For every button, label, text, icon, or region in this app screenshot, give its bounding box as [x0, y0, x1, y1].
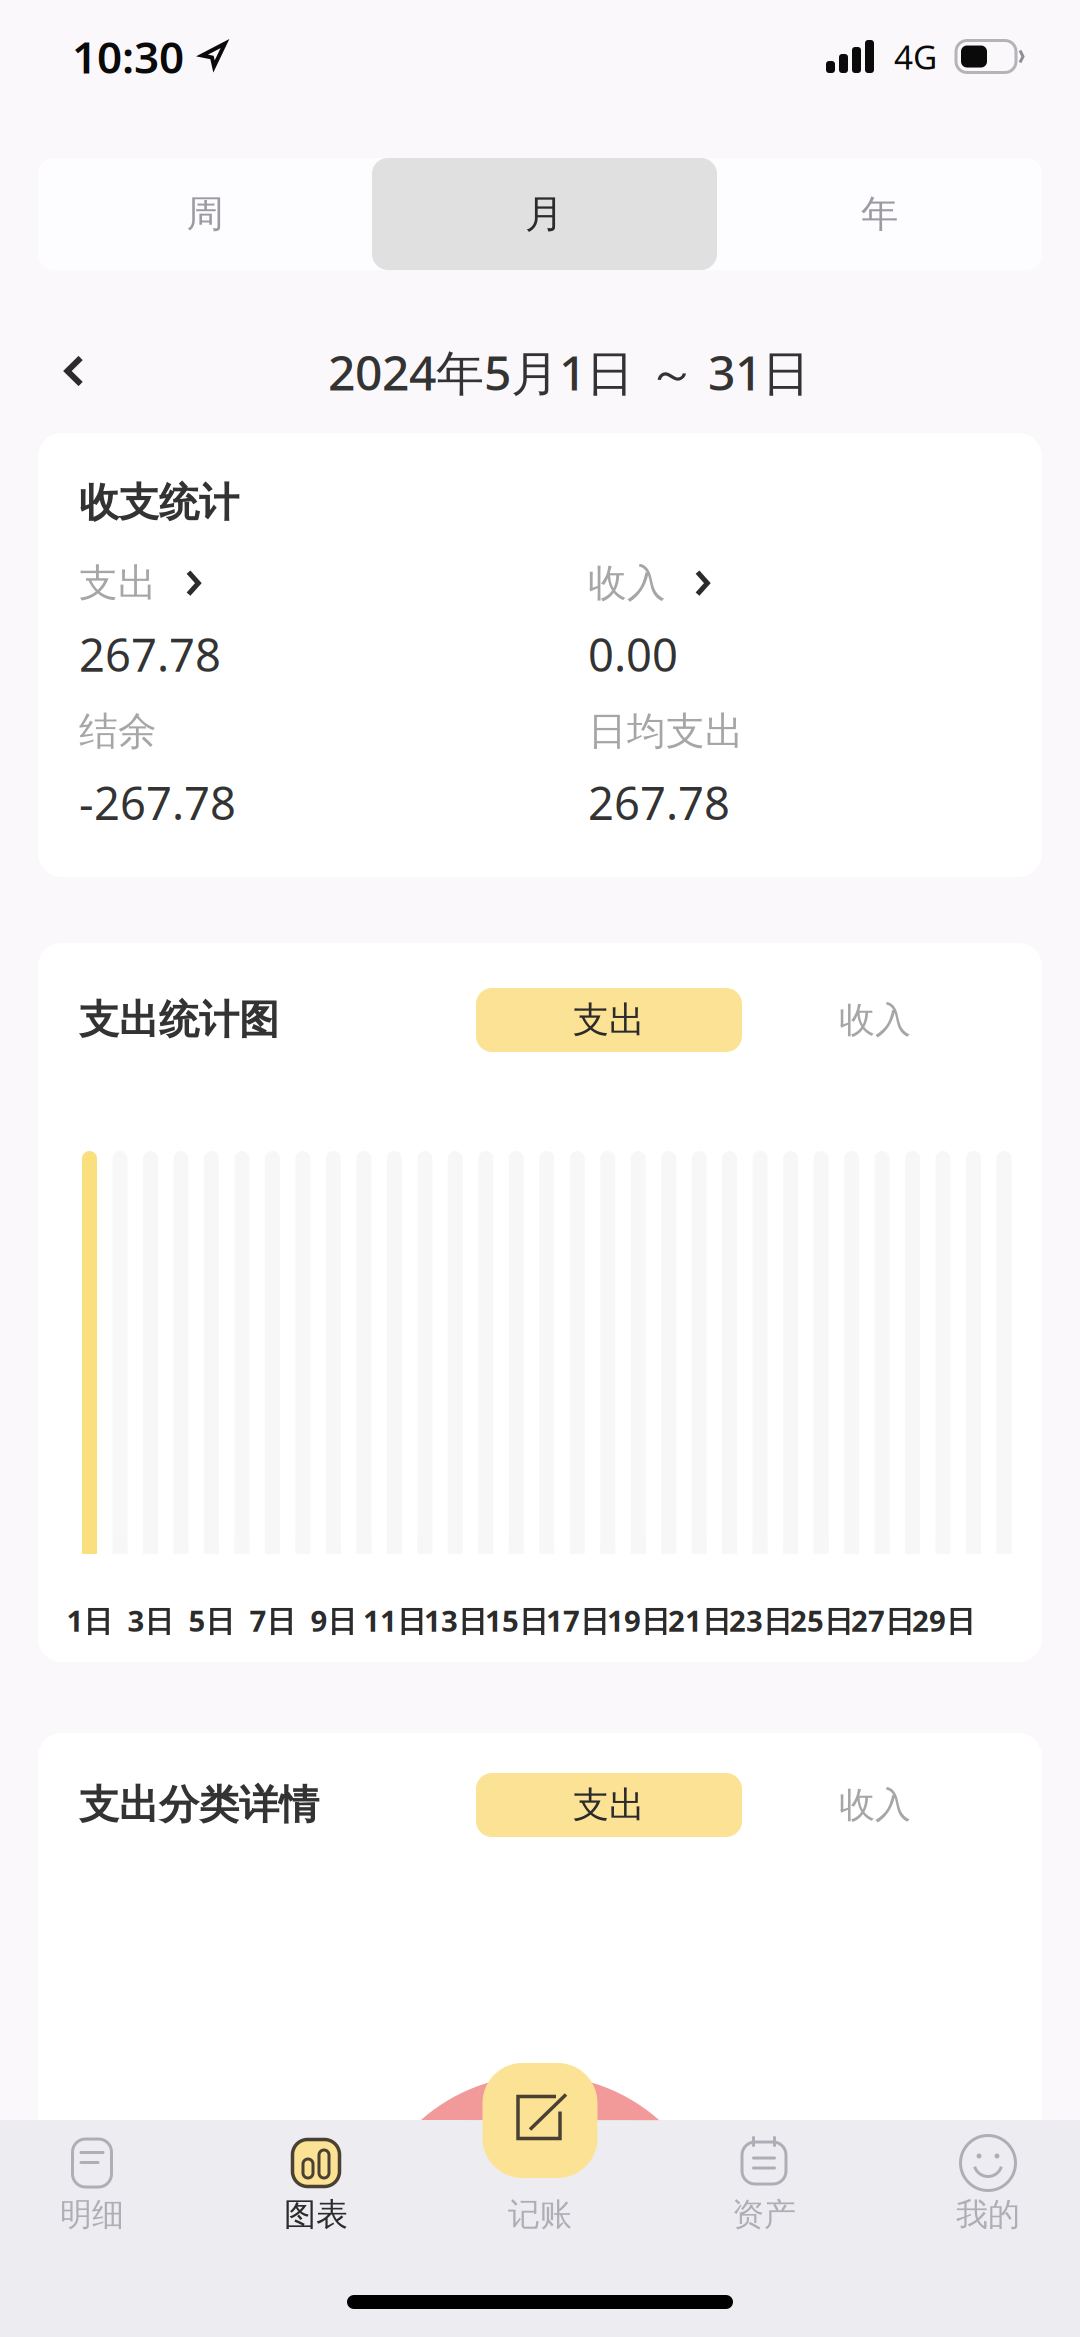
- staticText: 4G: [894, 34, 937, 79]
- staticText: 收入: [839, 1783, 911, 1827]
- staticText: 11日: [363, 1601, 426, 1640]
- staticText: 17日: [546, 1601, 609, 1640]
- button[interactable]: 明细: [0, 2134, 204, 2259]
- staticText: 13日: [424, 1601, 487, 1640]
- staticText: 月: [525, 190, 564, 238]
- staticText: 10:30: [72, 27, 184, 86]
- staticText: 5日: [188, 1601, 234, 1640]
- staticText: 15日: [485, 1601, 548, 1640]
- button[interactable]: 周: [38, 158, 372, 270]
- button[interactable]: 收入: [588, 561, 1001, 684]
- staticText: 25日: [790, 1601, 853, 1640]
- button[interactable]: 我的: [876, 2134, 1080, 2259]
- button[interactable]: 记账: [482, 2063, 597, 2178]
- button[interactable]: 支出: [79, 561, 588, 684]
- staticText: 资产: [732, 2195, 796, 2234]
- staticText: 267.78: [588, 772, 730, 832]
- staticText: 267.78: [79, 624, 221, 684]
- staticText: 收入: [839, 998, 911, 1042]
- staticText: 2024年5月1日 ～ 31日: [328, 340, 810, 404]
- staticText: 19日: [607, 1601, 670, 1640]
- staticText: 1日: [66, 1601, 112, 1640]
- staticText: 支出: [79, 559, 157, 607]
- staticText: 明细: [60, 2195, 124, 2234]
- button[interactable]: 支出: [476, 1773, 742, 1837]
- button[interactable]: 支出: [476, 988, 742, 1052]
- button[interactable]: 月: [372, 158, 717, 270]
- button[interactable]: 年: [717, 158, 1042, 270]
- button[interactable]: 收入: [742, 1773, 1008, 1837]
- button[interactable]: 资产: [652, 2134, 876, 2259]
- staticText: 0.00: [588, 624, 678, 684]
- staticText: 9日: [310, 1601, 356, 1640]
- button[interactable]: Back: [26, 318, 122, 408]
- staticText: 支出: [573, 998, 645, 1042]
- staticText: 图表: [284, 2195, 348, 2234]
- staticText: 支出: [573, 1783, 645, 1827]
- staticText: 7日: [249, 1601, 295, 1640]
- staticText: 23日: [729, 1601, 792, 1640]
- button[interactable]: 收入: [742, 988, 1008, 1052]
- staticText: 27日: [851, 1601, 914, 1640]
- staticText: 3日: [127, 1601, 173, 1640]
- staticText: 周: [186, 191, 223, 237]
- staticText: 收支统计: [79, 478, 239, 527]
- staticText: 日均支出: [588, 708, 744, 755]
- staticText: 29日: [912, 1601, 975, 1640]
- staticText: -267.78: [79, 772, 236, 832]
- button[interactable]: 记账: [428, 2134, 652, 2259]
- button[interactable]: 图表: [204, 2134, 428, 2259]
- staticText: 我的: [956, 2195, 1020, 2234]
- staticText: 收入: [588, 559, 666, 607]
- staticText: 年: [861, 191, 898, 237]
- staticText: 21日: [668, 1601, 731, 1640]
- staticText: 支出分类详情: [79, 1780, 319, 1829]
- staticText: 支出统计图: [79, 995, 279, 1044]
- staticText: 记账: [508, 2195, 572, 2234]
- staticText: 结余: [79, 708, 157, 755]
